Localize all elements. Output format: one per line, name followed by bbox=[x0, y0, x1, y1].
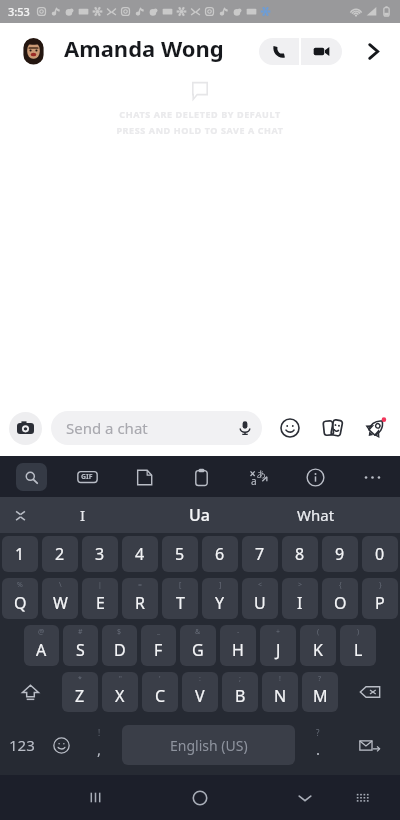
button[interactable]: ' bbox=[142, 672, 178, 712]
button[interactable]: Send a chat bbox=[51, 411, 262, 445]
button[interactable]: What bbox=[272, 497, 360, 533]
button[interactable]: Ua bbox=[126, 497, 272, 533]
button[interactable]: < bbox=[242, 578, 278, 619]
staticText: ) bbox=[357, 627, 360, 637]
staticText: 6 bbox=[215, 543, 225, 565]
button[interactable]: $ bbox=[102, 625, 137, 666]
button[interactable]: ? bbox=[302, 672, 338, 712]
staticText: 0 bbox=[375, 543, 385, 565]
staticText: S bbox=[76, 639, 85, 661]
button[interactable]: Voice message bbox=[228, 411, 262, 445]
button[interactable]: Emoji bbox=[274, 412, 306, 444]
button[interactable]: * bbox=[62, 672, 98, 712]
staticText: F bbox=[154, 639, 163, 661]
button[interactable]: @ bbox=[24, 625, 59, 666]
staticText: \ bbox=[59, 580, 62, 590]
button[interactable]: Search bbox=[16, 463, 47, 491]
button[interactable]: Backspace bbox=[340, 669, 400, 715]
button[interactable]: Stickers bbox=[317, 412, 349, 444]
button[interactable]: \ bbox=[42, 578, 78, 619]
staticText: PRESS AND HOLD TO SAVE A CHAT bbox=[116, 124, 284, 136]
button[interactable]: 5 bbox=[162, 536, 198, 572]
button[interactable]: Hide keyboard bbox=[281, 775, 329, 820]
button[interactable]: ; bbox=[222, 672, 258, 712]
button[interactable]: 0 bbox=[362, 536, 398, 572]
button[interactable]: - bbox=[220, 625, 256, 666]
button[interactable]: 7 bbox=[242, 536, 278, 572]
button[interactable]: 123 bbox=[0, 715, 44, 775]
button[interactable]: = bbox=[122, 578, 158, 619]
button[interactable]: ) bbox=[340, 625, 376, 666]
button[interactable]: % bbox=[2, 578, 38, 619]
button[interactable]: More bbox=[356, 461, 388, 493]
staticText: Z bbox=[75, 685, 85, 707]
staticText: O bbox=[334, 592, 347, 614]
button[interactable]: Send bbox=[339, 715, 400, 775]
button[interactable]: Camera bbox=[9, 412, 42, 445]
staticText: Ua bbox=[189, 504, 210, 526]
button[interactable]: [ bbox=[162, 578, 198, 619]
button[interactable]: : bbox=[182, 672, 218, 712]
button[interactable]: & bbox=[180, 625, 216, 666]
button[interactable]: Stickers bbox=[128, 461, 160, 493]
button[interactable]: 2 bbox=[42, 536, 78, 572]
staticText: 9 bbox=[335, 543, 345, 565]
button[interactable]: ! bbox=[78, 715, 120, 775]
button[interactable]: Video call bbox=[301, 38, 342, 65]
button[interactable]: 4 bbox=[122, 536, 158, 572]
staticText: ! bbox=[279, 674, 281, 684]
button[interactable]: Expand toolbar bbox=[0, 497, 40, 533]
button[interactable]: 1 bbox=[2, 536, 38, 572]
button[interactable]: 6 bbox=[202, 536, 238, 572]
button[interactable]: Games bbox=[360, 412, 392, 444]
button[interactable]: Recent apps bbox=[71, 775, 119, 820]
button[interactable]: English (US) bbox=[122, 725, 295, 765]
button[interactable]: # bbox=[63, 625, 98, 666]
staticText: ? bbox=[316, 727, 320, 738]
staticText: ; bbox=[239, 674, 241, 684]
button[interactable]: 8 bbox=[282, 536, 318, 572]
staticText: B bbox=[235, 685, 246, 707]
staticText: G bbox=[192, 639, 204, 661]
button[interactable]: 3 bbox=[82, 536, 118, 572]
button[interactable]: ( bbox=[300, 625, 336, 666]
staticText: K bbox=[313, 639, 323, 661]
button[interactable]: { bbox=[322, 578, 358, 619]
staticText: : bbox=[199, 674, 201, 684]
button[interactable]: Switch keyboard bbox=[338, 775, 386, 820]
button[interactable]: _ bbox=[141, 625, 176, 666]
button[interactable]: " bbox=[102, 672, 138, 712]
staticText: P bbox=[375, 592, 385, 614]
button[interactable]: ! bbox=[262, 672, 298, 712]
button[interactable]: Call bbox=[259, 38, 299, 65]
staticText: _ bbox=[157, 627, 161, 637]
button[interactable]: 9 bbox=[322, 536, 358, 572]
staticText: GIF bbox=[81, 472, 93, 482]
button[interactable]: | bbox=[82, 578, 118, 619]
staticText: English (US) bbox=[170, 736, 248, 755]
staticText: U bbox=[254, 592, 266, 614]
button[interactable]: Emoji keyboard bbox=[44, 715, 78, 775]
button[interactable]: Clipboard bbox=[185, 461, 217, 493]
button[interactable]: I bbox=[40, 497, 126, 533]
button[interactable]: Settings bbox=[299, 461, 331, 493]
staticText: 3:53 bbox=[8, 4, 30, 19]
button[interactable]: Translate bbox=[242, 461, 274, 493]
button[interactable]: ] bbox=[202, 578, 238, 619]
staticText: " bbox=[119, 674, 122, 684]
button[interactable]: Profile bbox=[16, 34, 50, 68]
button[interactable]: Shift bbox=[0, 669, 60, 715]
button[interactable]: ? bbox=[297, 715, 339, 775]
staticText: @ bbox=[38, 627, 45, 637]
staticText: W bbox=[53, 592, 68, 614]
button[interactable]: Home bbox=[176, 775, 224, 820]
button[interactable]: More options bbox=[358, 36, 388, 66]
staticText: A bbox=[36, 639, 47, 661]
staticText: 7 bbox=[255, 543, 265, 565]
button[interactable]: + bbox=[260, 625, 296, 666]
button[interactable]: } bbox=[362, 578, 398, 619]
staticText: $ bbox=[117, 627, 122, 637]
staticText: E bbox=[96, 592, 105, 614]
button[interactable]: GIF bbox=[71, 461, 103, 493]
button[interactable]: > bbox=[282, 578, 318, 619]
